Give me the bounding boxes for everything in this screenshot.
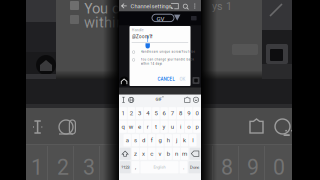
staticText: l xyxy=(192,137,193,144)
staticText: You can change your handle back xyxy=(140,58,193,61)
staticText: g xyxy=(158,137,161,144)
staticText: GIF xyxy=(155,97,161,102)
staticText: x xyxy=(142,150,145,157)
staticText: GV xyxy=(156,15,164,23)
staticText: y xyxy=(163,123,166,130)
staticText: 0 xyxy=(195,110,198,117)
staticText: u xyxy=(171,123,174,130)
staticText: r xyxy=(147,123,149,130)
staticText: Handle xyxy=(132,28,144,32)
staticText: i xyxy=(180,123,181,130)
staticText: 3 xyxy=(83,155,95,180)
staticText: 1 xyxy=(122,110,125,117)
staticText: s xyxy=(134,137,137,144)
staticText: 9 xyxy=(247,155,259,180)
staticText: 8 xyxy=(221,155,233,180)
staticText: v xyxy=(158,150,161,157)
staticText: w xyxy=(129,123,134,130)
staticText: b xyxy=(167,150,170,157)
staticText: within 14 days xyxy=(140,62,161,65)
staticText: Done xyxy=(190,165,199,170)
staticText: k xyxy=(183,137,186,144)
staticText: 6 xyxy=(163,110,166,117)
staticText: 5 xyxy=(154,110,157,117)
staticText: j xyxy=(176,137,177,144)
staticText: 1 xyxy=(31,155,43,180)
staticText: p xyxy=(195,123,198,130)
staticText: t xyxy=(155,123,157,130)
staticText: q xyxy=(122,123,125,130)
staticText: @Zoony1f xyxy=(132,34,153,39)
staticText: h xyxy=(167,137,170,144)
staticText: 7 xyxy=(171,110,174,117)
staticText: 2 xyxy=(130,110,133,117)
staticText: m xyxy=(182,150,187,157)
staticText: 0 xyxy=(273,155,285,180)
staticText: 4 xyxy=(146,110,149,117)
staticText: You c xyxy=(84,0,120,17)
staticText: z xyxy=(134,150,137,157)
staticText: 8 xyxy=(179,110,182,117)
staticText: Handles are unique across YouTube xyxy=(140,50,195,54)
button[interactable]: Space xyxy=(0,0,39,13)
staticText: within xyxy=(84,14,124,31)
staticText: n xyxy=(175,150,178,157)
staticText: , xyxy=(135,164,136,171)
staticText: d xyxy=(142,137,145,144)
staticText: 9 xyxy=(187,110,190,117)
staticText: ys 1 xyxy=(212,0,232,12)
staticText: f xyxy=(151,137,153,144)
staticText: 2 xyxy=(57,155,69,180)
staticText: ?123 xyxy=(121,165,129,170)
staticText: OK xyxy=(179,76,185,82)
